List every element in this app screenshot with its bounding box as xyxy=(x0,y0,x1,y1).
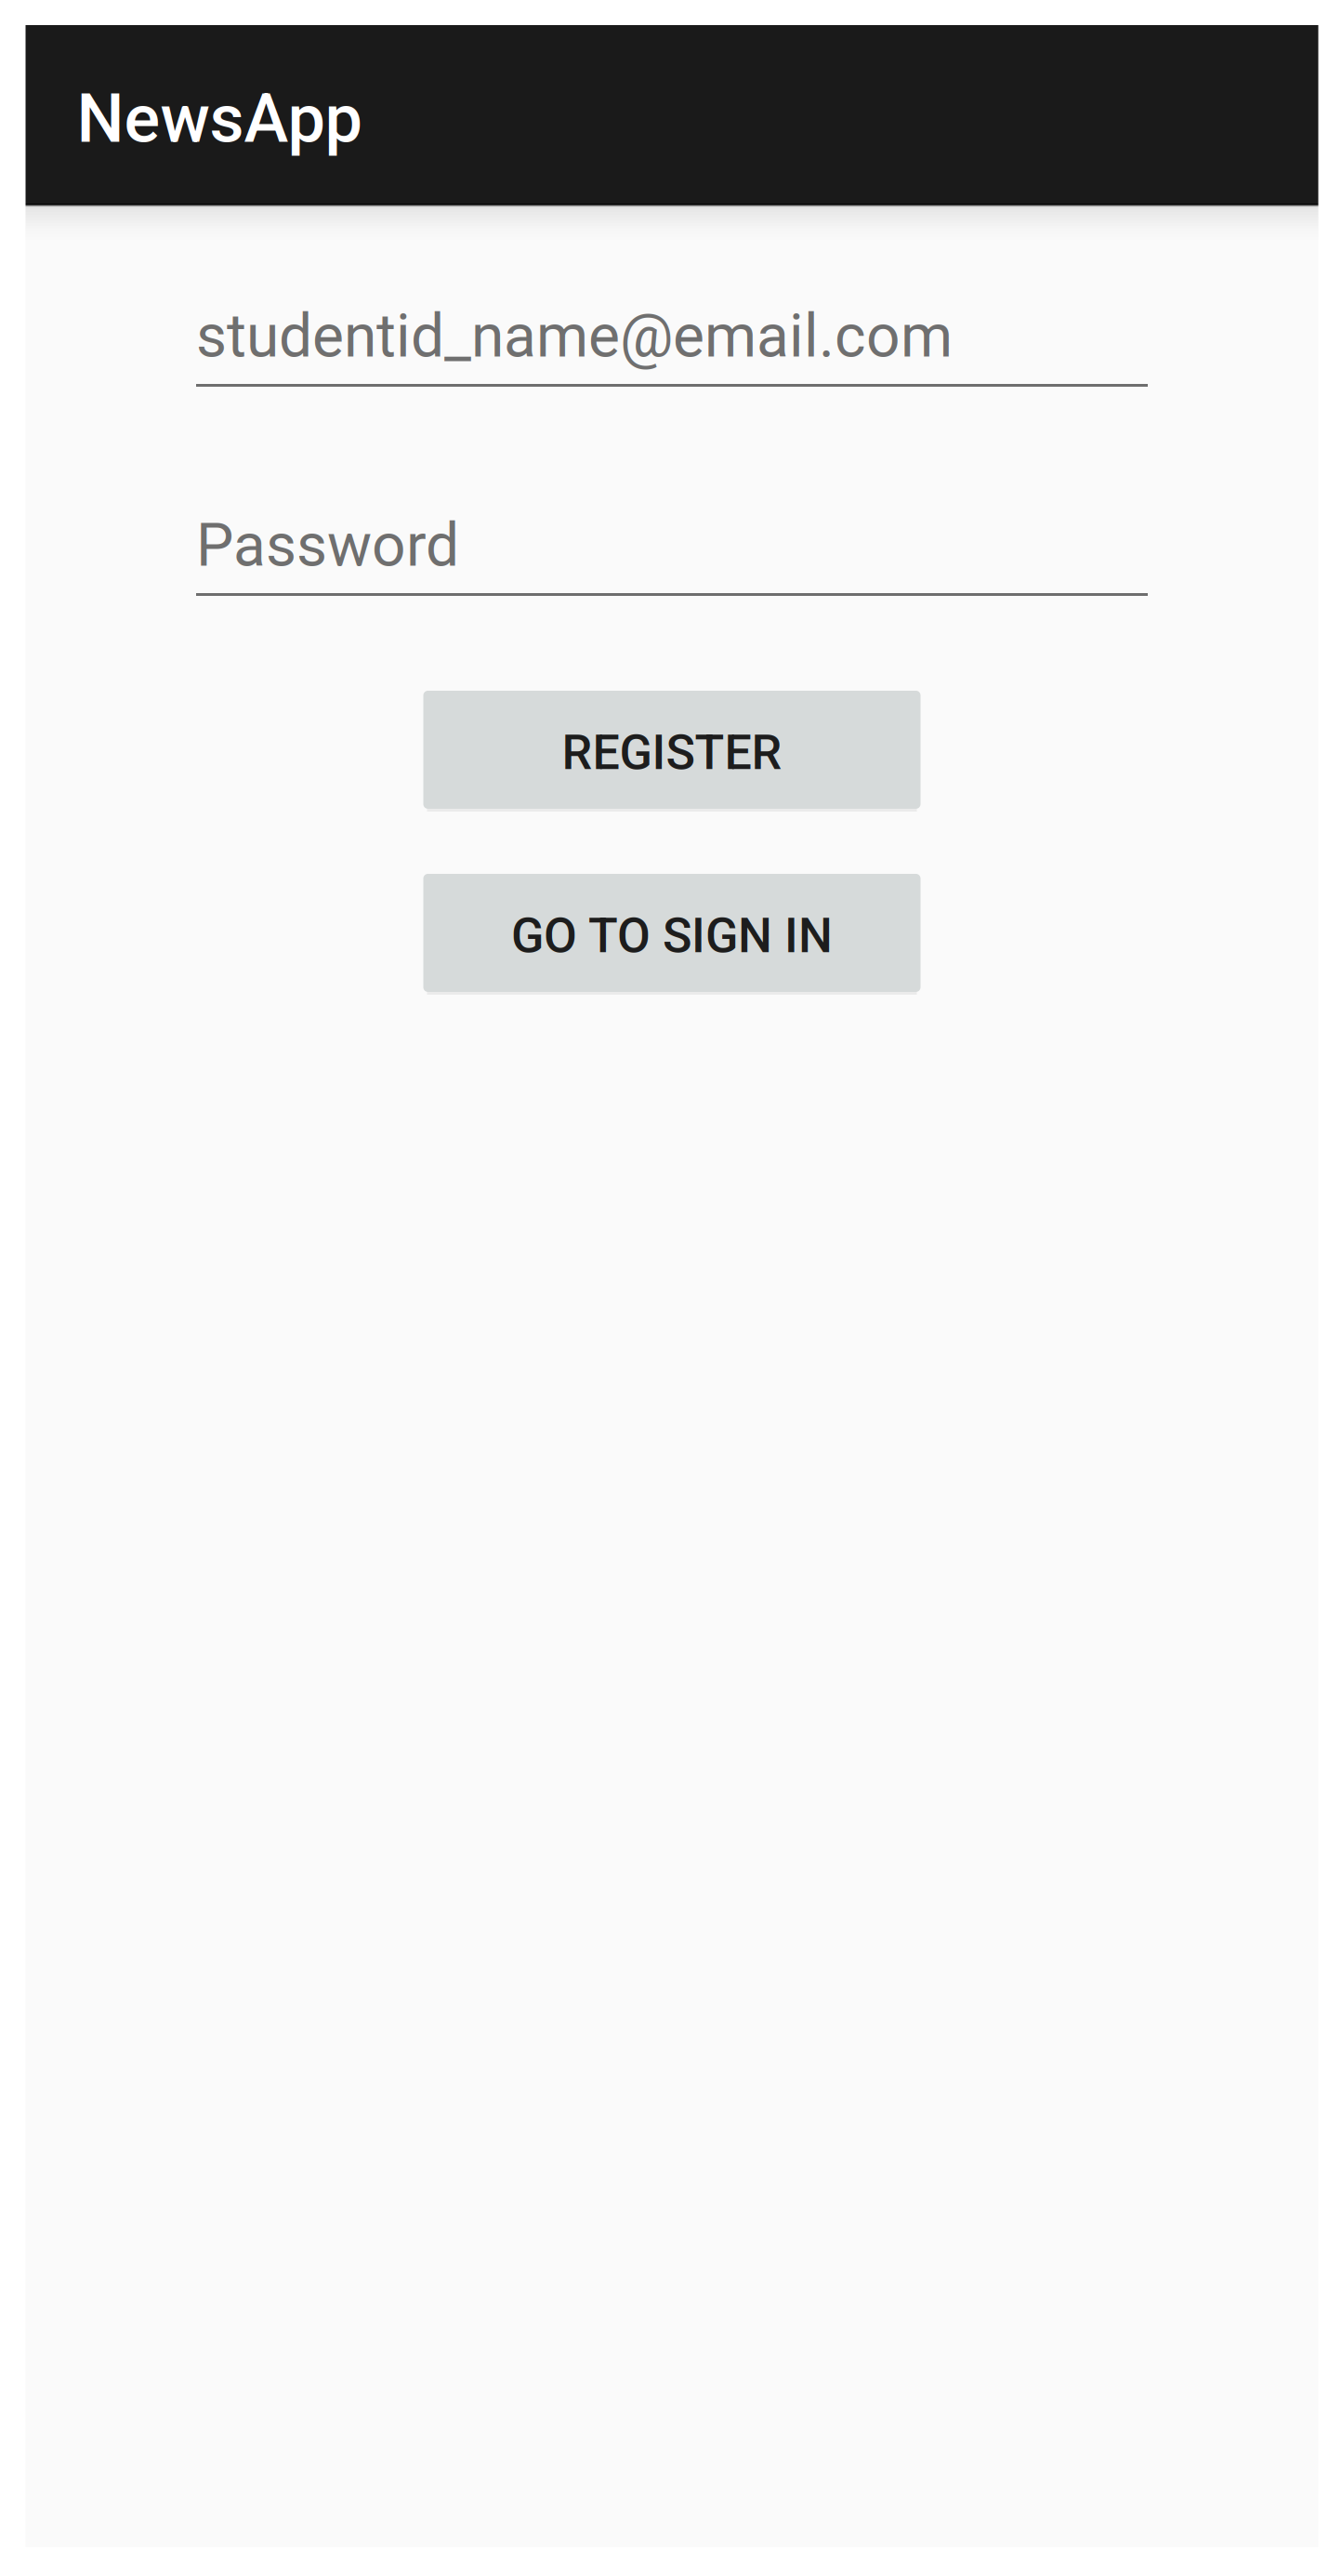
staticText: REGISTER xyxy=(562,724,782,781)
button[interactable]: studentid_name@email.com xyxy=(196,297,1148,387)
staticText: Password xyxy=(196,510,459,580)
button[interactable]: Password xyxy=(196,507,1148,596)
staticText: GO TO SIGN IN xyxy=(511,907,833,964)
button[interactable]: GO TO SIGN IN xyxy=(423,874,921,995)
button[interactable]: REGISTER xyxy=(423,691,921,812)
staticText: studentid_name@email.com xyxy=(196,301,953,371)
staticText: NewsApp xyxy=(77,80,362,158)
